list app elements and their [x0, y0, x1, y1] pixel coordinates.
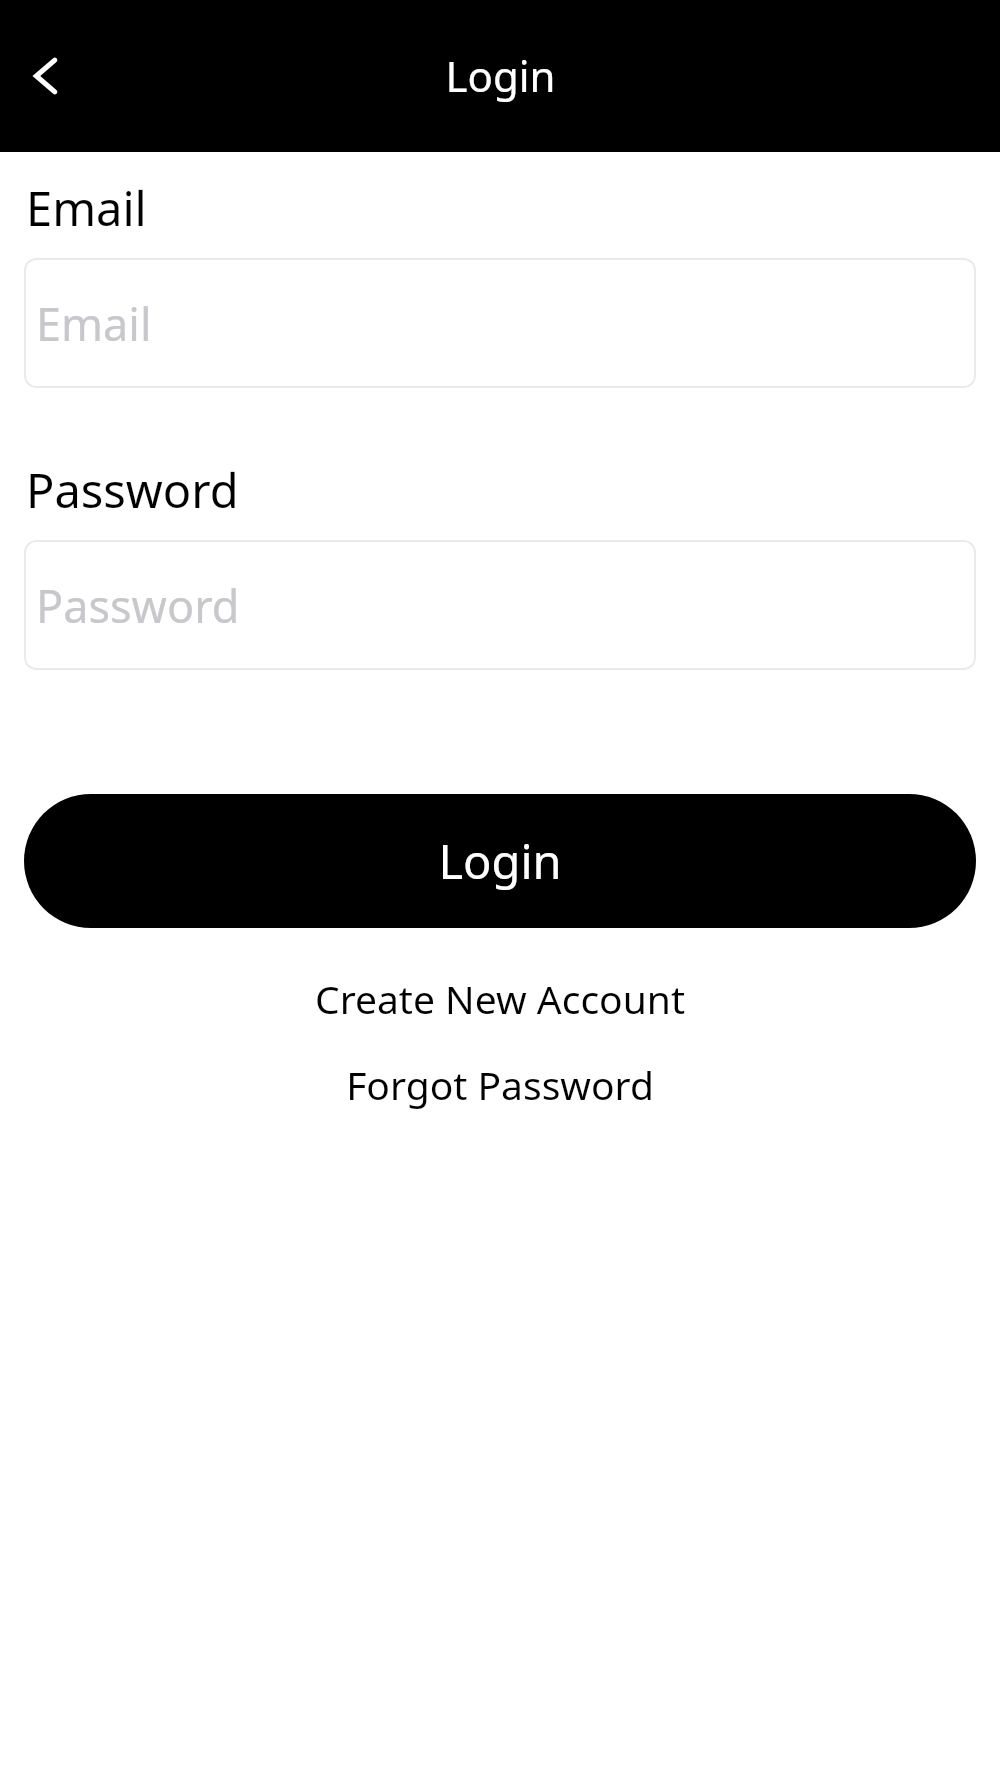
staticText: Login — [445, 47, 556, 104]
staticText: Email — [36, 293, 152, 354]
staticText: Password — [26, 458, 239, 522]
staticText: Create New Account — [315, 972, 685, 1025]
staticText: Login — [438, 829, 562, 893]
button[interactable]: Password — [24, 540, 976, 670]
staticText: Forgot Password — [346, 1058, 654, 1111]
button[interactable]: Create New Account — [24, 964, 976, 1032]
button[interactable]: Back — [8, 38, 84, 114]
staticText: Email — [26, 176, 147, 240]
button[interactable]: Forgot Password — [24, 1050, 976, 1118]
staticText: Password — [36, 575, 240, 636]
button[interactable]: Login — [24, 794, 976, 928]
button[interactable]: Email — [24, 258, 976, 388]
